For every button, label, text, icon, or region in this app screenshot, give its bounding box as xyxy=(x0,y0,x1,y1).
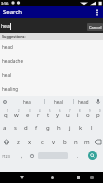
staticText: 0 xyxy=(99,109,101,113)
staticText: u xyxy=(66,111,70,119)
button[interactable]: healing xyxy=(0,82,103,96)
button[interactable]: heal xyxy=(45,96,73,107)
staticText: headache xyxy=(2,58,24,64)
button[interactable]: head xyxy=(0,40,103,54)
staticText: x xyxy=(28,138,32,146)
staticText: g xyxy=(46,124,50,132)
button[interactable]: 2 xyxy=(11,107,22,121)
button[interactable]: Recent apps xyxy=(72,172,84,183)
button[interactable]: g xyxy=(42,121,53,135)
button[interactable]: hea xyxy=(9,96,44,107)
button[interactable]: 8 xyxy=(73,107,83,121)
button[interactable]: Voice input xyxy=(93,96,103,107)
staticText: , xyxy=(21,153,23,160)
staticText: t xyxy=(47,111,50,119)
button[interactable]: Expand suggestions xyxy=(0,96,9,107)
button[interactable]: f xyxy=(31,121,42,135)
staticText: Search xyxy=(3,8,22,16)
button[interactable]: head xyxy=(74,96,93,107)
button[interactable]: c xyxy=(36,135,48,149)
button[interactable]: Emoji xyxy=(26,149,37,163)
button[interactable]: l xyxy=(86,121,97,135)
staticText: Cancel xyxy=(89,25,102,30)
staticText: l xyxy=(91,124,93,132)
button[interactable]: 7 xyxy=(63,107,73,121)
staticText: 9 xyxy=(89,109,91,113)
button[interactable]: 0 xyxy=(93,107,103,121)
staticText: o xyxy=(86,111,90,119)
staticText: 7 xyxy=(69,109,71,113)
button[interactable]: x xyxy=(24,135,36,149)
staticText: e xyxy=(26,111,30,119)
button[interactable]: 3 xyxy=(22,107,33,121)
staticText: ?123 xyxy=(2,154,10,159)
staticText: 1 xyxy=(7,109,9,113)
button[interactable]: 6 xyxy=(53,107,63,121)
staticText: v xyxy=(52,138,56,146)
staticText: k xyxy=(79,124,83,132)
staticText: 5 xyxy=(49,109,51,113)
button[interactable]: h xyxy=(53,121,64,135)
staticText: w xyxy=(14,111,19,119)
button[interactable]: z xyxy=(12,135,24,149)
button[interactable]: ?123 xyxy=(0,149,11,163)
staticText: head xyxy=(78,99,89,105)
staticText: d xyxy=(24,124,28,132)
staticText: r xyxy=(37,111,40,119)
staticText: heal xyxy=(54,99,64,105)
staticText: 3 xyxy=(29,109,31,113)
staticText: s xyxy=(14,124,17,132)
staticText: i xyxy=(77,111,79,119)
button[interactable]: 4 xyxy=(33,107,43,121)
button[interactable]: heal xyxy=(0,68,103,82)
staticText: q xyxy=(4,111,8,119)
staticText: b xyxy=(63,138,67,146)
button[interactable]: Shift xyxy=(0,135,12,149)
staticText: y xyxy=(56,111,60,119)
button[interactable]: b xyxy=(59,135,70,149)
button[interactable]: k xyxy=(75,121,86,135)
staticText: 3:56 xyxy=(1,1,9,6)
button[interactable]: 5 xyxy=(43,107,53,121)
staticText: healing xyxy=(2,86,19,92)
button[interactable]: headache xyxy=(0,54,103,68)
staticText: n xyxy=(74,138,78,146)
button[interactable]: s xyxy=(10,121,20,135)
button[interactable]: , xyxy=(16,149,27,163)
button[interactable]: m xyxy=(81,135,92,149)
staticText: head xyxy=(2,44,13,50)
button[interactable]: Home xyxy=(46,172,58,183)
button[interactable]: v xyxy=(48,135,59,149)
staticText: p xyxy=(96,111,100,119)
button[interactable]: n xyxy=(70,135,81,149)
staticText: 8 xyxy=(79,109,81,113)
button[interactable]: 1 xyxy=(0,107,11,121)
staticText: c xyxy=(41,138,44,146)
staticText: f xyxy=(35,124,38,132)
staticText: z xyxy=(17,138,20,146)
staticText: 4 xyxy=(39,109,41,113)
staticText: heal xyxy=(2,72,12,78)
button[interactable]: More options xyxy=(91,6,103,18)
staticText: . xyxy=(77,153,79,160)
button[interactable]: a xyxy=(0,121,10,135)
staticText: j xyxy=(69,124,71,132)
staticText: m xyxy=(84,138,90,146)
button[interactable]: d xyxy=(20,121,31,135)
button[interactable]: Hide keyboard xyxy=(16,172,28,183)
staticText: a xyxy=(3,124,7,132)
button[interactable]: 9 xyxy=(83,107,93,121)
staticText: Suggestions: xyxy=(2,34,26,39)
staticText: 6 xyxy=(59,109,61,113)
button[interactable]: Backspace xyxy=(92,135,103,149)
staticText: h xyxy=(57,124,61,132)
button[interactable]: Search xyxy=(88,151,97,160)
staticText: hea xyxy=(23,99,31,105)
button[interactable]: Switch keyboard xyxy=(86,172,98,183)
button[interactable]: j xyxy=(64,121,75,135)
button[interactable]: . xyxy=(72,149,83,163)
staticText: hea xyxy=(1,23,10,30)
staticText: 2 xyxy=(18,109,20,113)
button[interactable]: Cancel xyxy=(87,23,103,31)
